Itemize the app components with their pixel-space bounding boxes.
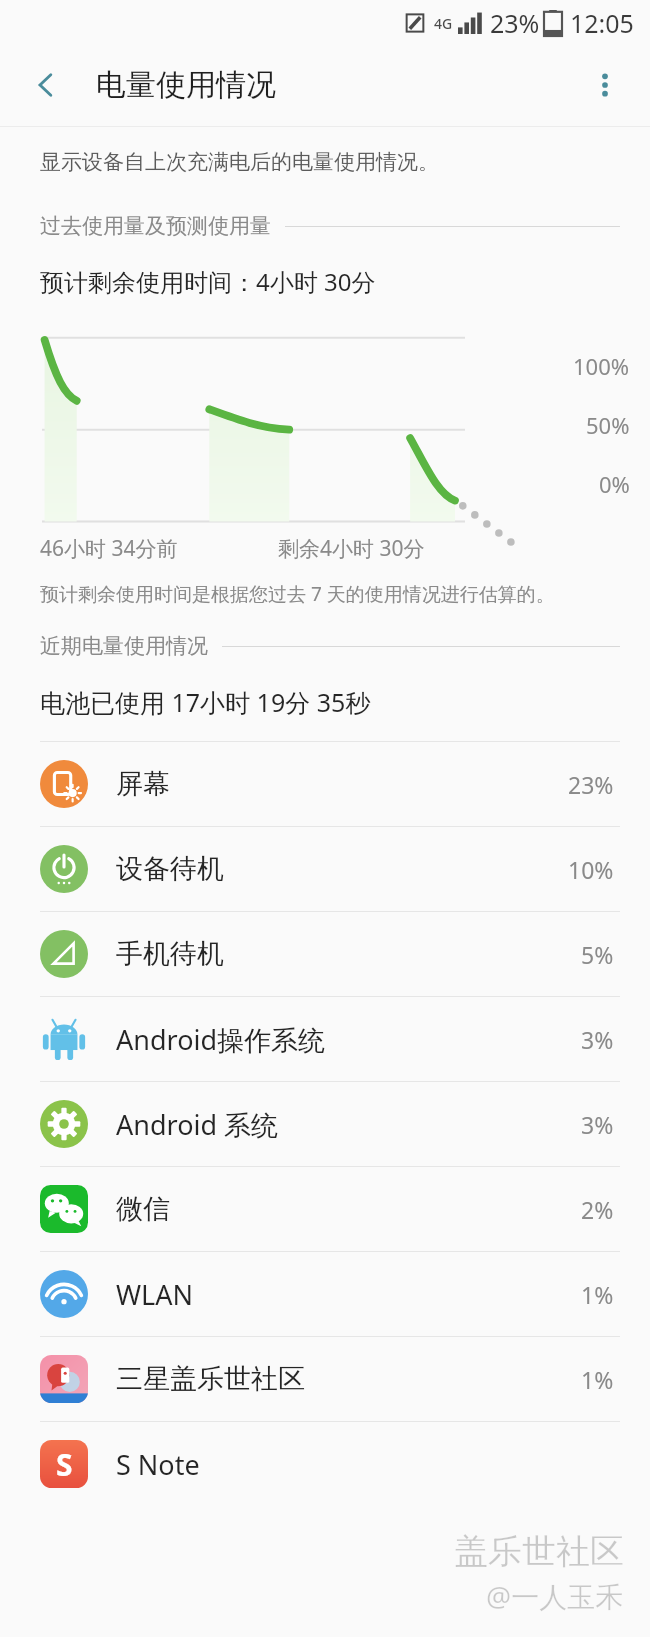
staticText: 显示设备自上次充满电后的电量使用情况。 <box>40 149 439 175</box>
staticText: S Note <box>116 1446 614 1483</box>
staticText: 电池已使用 17小时 19分 35秒 <box>40 685 371 719</box>
button[interactable]: 屏幕 <box>0 742 650 826</box>
staticText: 2% <box>581 1194 614 1225</box>
staticText: 预计剩余使用时间：4小时 30分 <box>40 265 376 298</box>
button[interactable]: 微信 <box>0 1167 650 1251</box>
staticText: 5% <box>581 939 614 970</box>
staticText: 过去使用量及预测使用量 <box>40 213 271 239</box>
button[interactable]: Android操作系统 <box>0 997 650 1081</box>
staticText: 剩余4小时 30分 <box>278 534 425 563</box>
button[interactable]: 手机待机 <box>0 912 650 996</box>
staticText: Android 系统 <box>116 1106 581 1143</box>
staticText: 1% <box>581 1364 614 1395</box>
button[interactable]: WLAN <box>0 1252 650 1336</box>
staticText: 4G <box>434 14 453 33</box>
staticText: 电量使用情况 <box>96 66 276 104</box>
staticText: 微信 <box>116 1192 581 1226</box>
staticText: 23% <box>568 769 614 800</box>
staticText: 预计剩余使用时间是根据您过去 7 天的使用情况进行估算的。 <box>40 581 555 607</box>
staticText: @一人玉禾 <box>486 1577 624 1615</box>
staticText: 屏幕 <box>116 767 568 801</box>
staticText: 3% <box>581 1024 614 1055</box>
button[interactable]: More options <box>578 58 632 112</box>
staticText: Android操作系统 <box>116 1021 581 1058</box>
staticText: S <box>56 1444 73 1485</box>
staticText: 手机待机 <box>116 937 581 971</box>
staticText: 近期电量使用情况 <box>40 633 208 659</box>
staticText: 1% <box>581 1279 614 1310</box>
staticText: 12:05 <box>570 6 634 40</box>
button[interactable]: Android 系统 <box>0 1082 650 1166</box>
staticText: 设备待机 <box>116 852 568 886</box>
button[interactable]: S <box>0 1422 650 1506</box>
staticText: 50% <box>586 410 630 440</box>
button[interactable]: Back <box>20 59 72 111</box>
staticText: 10% <box>568 854 614 885</box>
staticText: 盖乐世社区 <box>454 1530 624 1573</box>
staticText: 46小时 34分前 <box>40 534 178 563</box>
button[interactable]: 设备待机 <box>0 827 650 911</box>
staticText: WLAN <box>116 1276 581 1313</box>
staticText: 0% <box>599 469 630 499</box>
staticText: 3% <box>581 1109 614 1140</box>
staticText: 三星盖乐世社区 <box>116 1362 581 1396</box>
button[interactable]: 三星盖乐世社区 <box>0 1337 650 1421</box>
staticText: 23% <box>490 6 540 40</box>
staticText: 100% <box>573 351 630 381</box>
